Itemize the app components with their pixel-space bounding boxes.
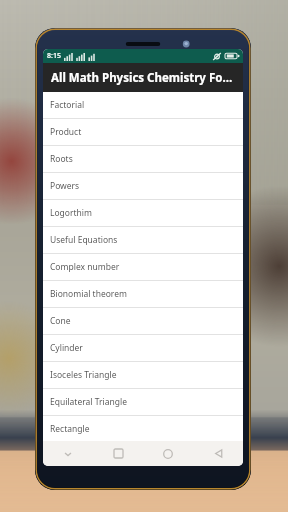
button[interactable]: Useful Equations: [43, 227, 243, 253]
staticText: Factorial: [50, 99, 85, 111]
staticText: Equilateral Triangle: [50, 396, 127, 408]
staticText: Logorthim: [50, 207, 92, 219]
staticText: Isoceles Triangle: [50, 369, 117, 381]
staticText: Bionomial theorem: [50, 288, 127, 300]
button[interactable]: Roots: [43, 146, 243, 172]
button[interactable]: Hide: [43, 441, 93, 466]
button[interactable]: Home: [143, 441, 193, 466]
staticText: All Math Physics Chemistry Form…: [51, 70, 237, 86]
button[interactable]: Equilateral Triangle: [43, 389, 243, 415]
button[interactable]: Logorthim: [43, 200, 243, 226]
staticText: Roots: [50, 153, 73, 165]
staticText: Useful Equations: [50, 234, 118, 246]
button[interactable]: Back: [193, 441, 243, 466]
button[interactable]: Factorial: [43, 92, 243, 118]
button[interactable]: Bionomial theorem: [43, 281, 243, 307]
staticText: 8:15: [47, 51, 61, 61]
button[interactable]: Recents: [93, 441, 143, 466]
button[interactable]: Isoceles Triangle: [43, 362, 243, 388]
button[interactable]: Complex number: [43, 254, 243, 280]
button[interactable]: Cone: [43, 308, 243, 334]
staticText: Complex number: [50, 261, 120, 273]
staticText: Cylinder: [50, 342, 83, 354]
button[interactable]: Cylinder: [43, 335, 243, 361]
staticText: Rectangle: [50, 423, 90, 435]
button[interactable]: Powers: [43, 173, 243, 199]
staticText: Powers: [50, 180, 80, 192]
staticText: Cone: [50, 315, 71, 327]
staticText: Product: [50, 126, 82, 138]
button[interactable]: Rectangle: [43, 416, 243, 441]
button[interactable]: Product: [43, 119, 243, 145]
button[interactable]: All Math Physics Chemistry Form…: [43, 63, 243, 92]
